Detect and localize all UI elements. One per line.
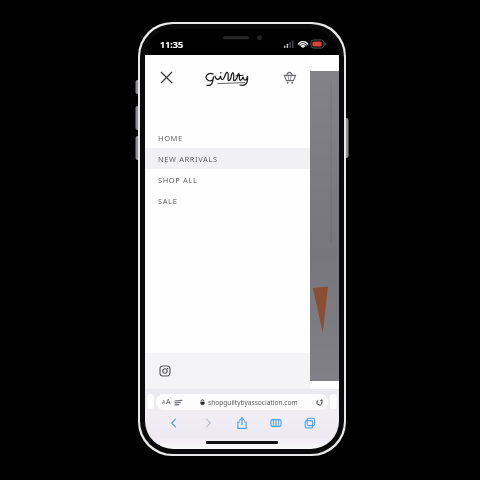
staticText: HOME: [158, 133, 183, 143]
staticText: shopguiltybyassociation.com: [208, 398, 298, 407]
button[interactable]: HOME: [145, 127, 310, 148]
button[interactable]: Bookmarks: [259, 414, 293, 432]
staticText: SALE: [158, 196, 178, 206]
staticText: NEW ARRIVALS: [158, 154, 218, 164]
button[interactable]: NEW ARRIVALS: [145, 148, 310, 169]
staticText: A: [166, 397, 171, 407]
button[interactable]: Close menu: [154, 65, 178, 89]
staticText: SHOP ALL: [158, 175, 198, 185]
button[interactable]: Instagram: [156, 362, 174, 380]
button[interactable]: SHOP ALL: [145, 169, 310, 190]
button[interactable]: Tabs: [293, 414, 327, 432]
button[interactable]: A: [156, 394, 328, 410]
button[interactable]: [203, 69, 253, 86]
staticText: 11:35: [160, 38, 184, 50]
button[interactable]: Forward: [191, 414, 225, 432]
button[interactable]: Back: [157, 414, 191, 432]
staticText: A: [162, 399, 166, 406]
button[interactable]: Share: [225, 414, 259, 432]
button[interactable]: SALE: [145, 190, 310, 211]
button[interactable]: Shopping cart: [277, 65, 301, 89]
